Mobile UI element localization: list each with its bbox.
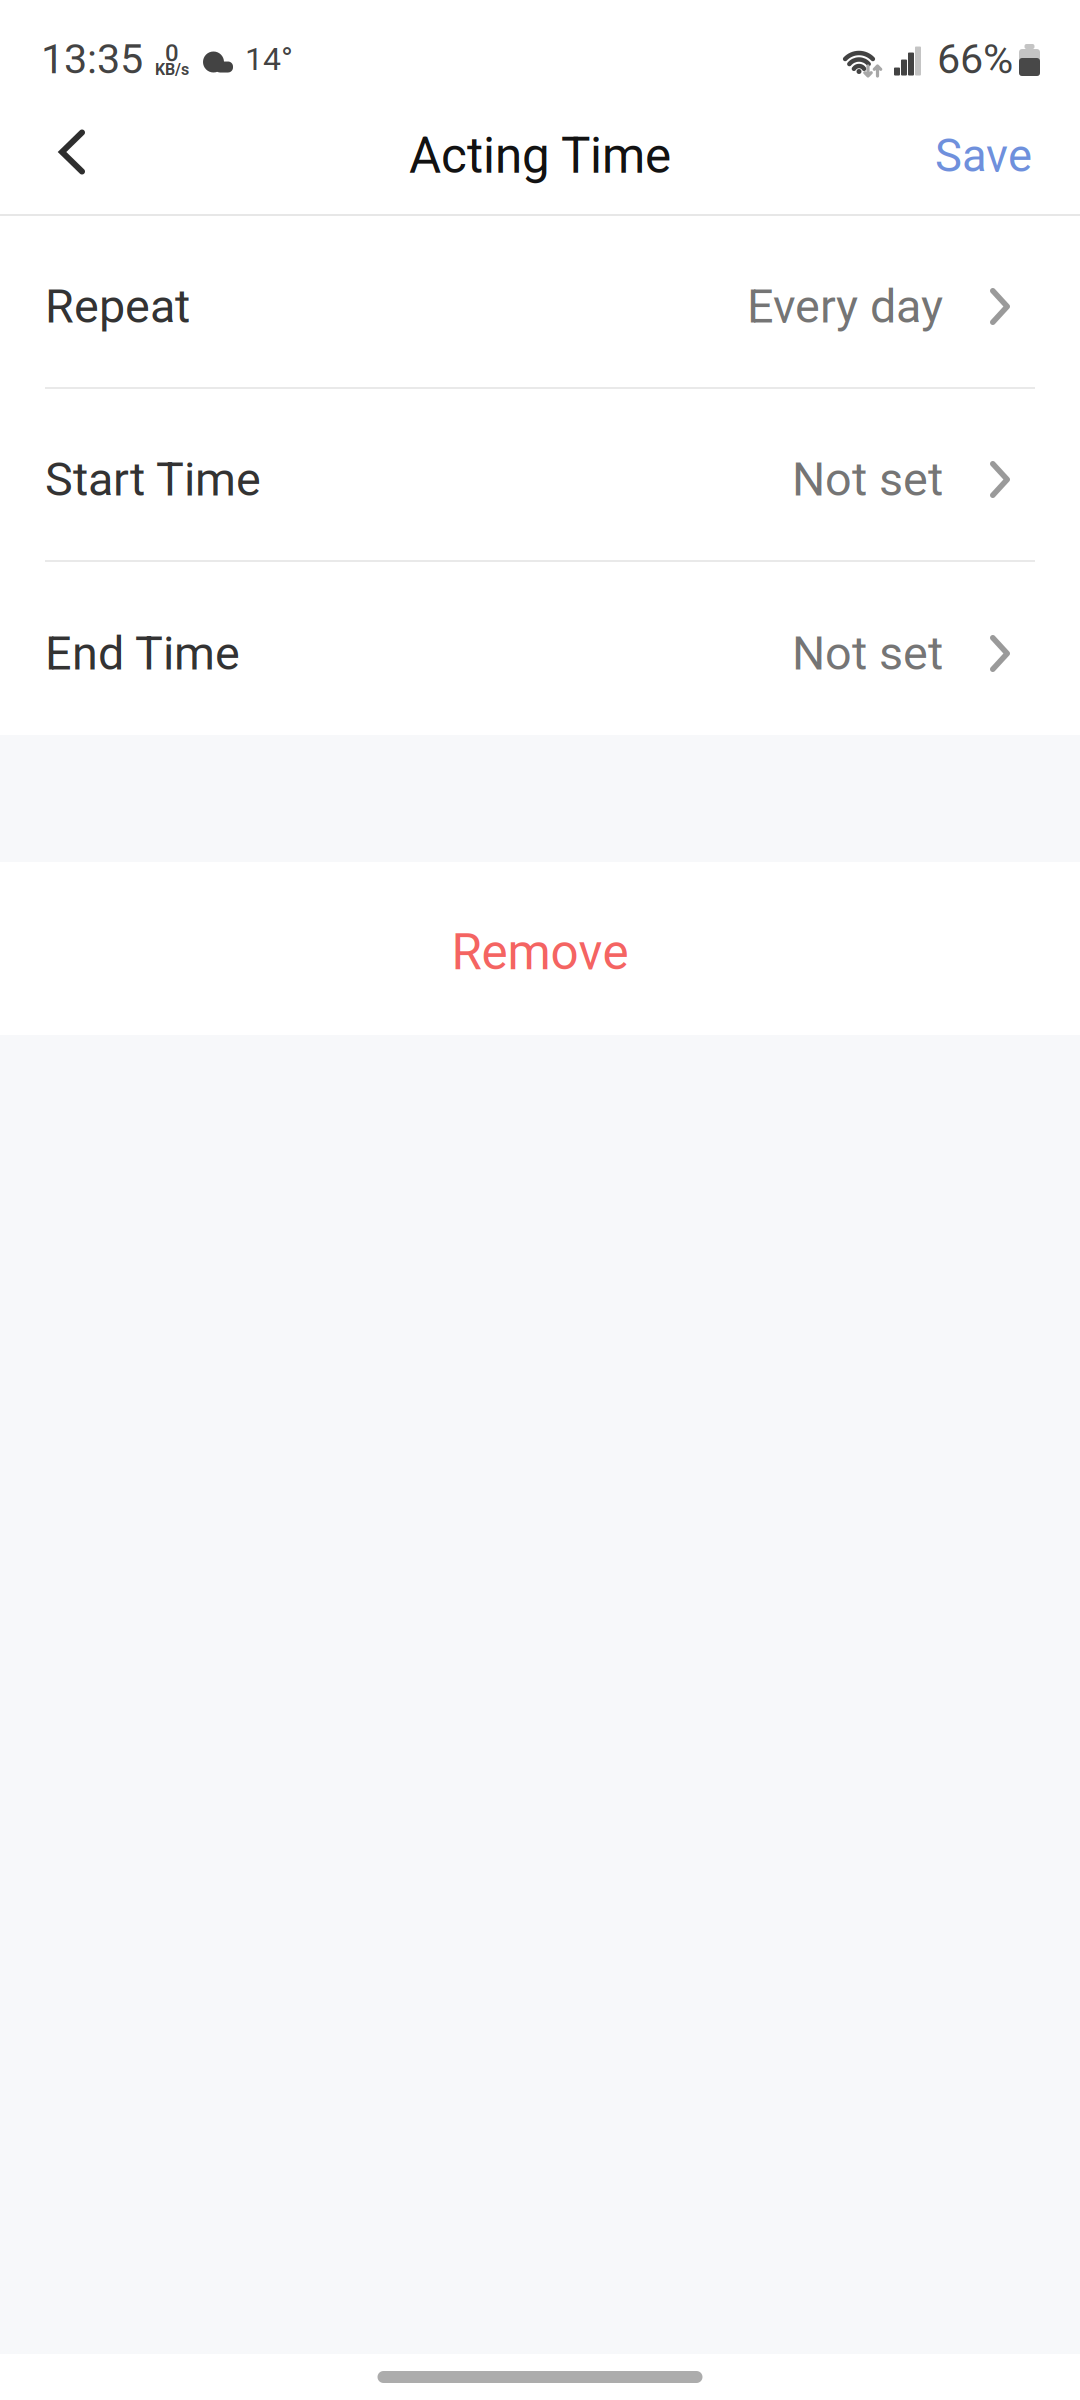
staticText: Acting Time bbox=[409, 127, 671, 185]
staticText: Remove bbox=[451, 924, 628, 981]
button[interactable]: Repeat bbox=[0, 216, 1080, 389]
button[interactable]: Start Time bbox=[0, 389, 1080, 562]
staticText: Start Time bbox=[45, 452, 261, 507]
button[interactable]: Remove bbox=[0, 862, 1080, 1035]
staticText: Repeat bbox=[45, 279, 190, 334]
button[interactable]: Save bbox=[901, 105, 1054, 215]
staticText: 14° bbox=[245, 40, 293, 78]
staticText: Not set bbox=[792, 452, 943, 507]
staticText: Not set bbox=[792, 626, 943, 681]
staticText: End Time bbox=[45, 626, 240, 681]
button[interactable]: End Time bbox=[0, 562, 1080, 735]
staticText: 0 bbox=[165, 39, 179, 67]
button[interactable]: Back bbox=[24, 105, 120, 215]
staticText: Save bbox=[935, 129, 1032, 182]
staticText: 13:35 bbox=[41, 35, 143, 83]
staticText: Every day bbox=[747, 279, 943, 334]
staticText: 66% bbox=[937, 35, 1013, 83]
staticText: KB/s bbox=[155, 60, 189, 79]
